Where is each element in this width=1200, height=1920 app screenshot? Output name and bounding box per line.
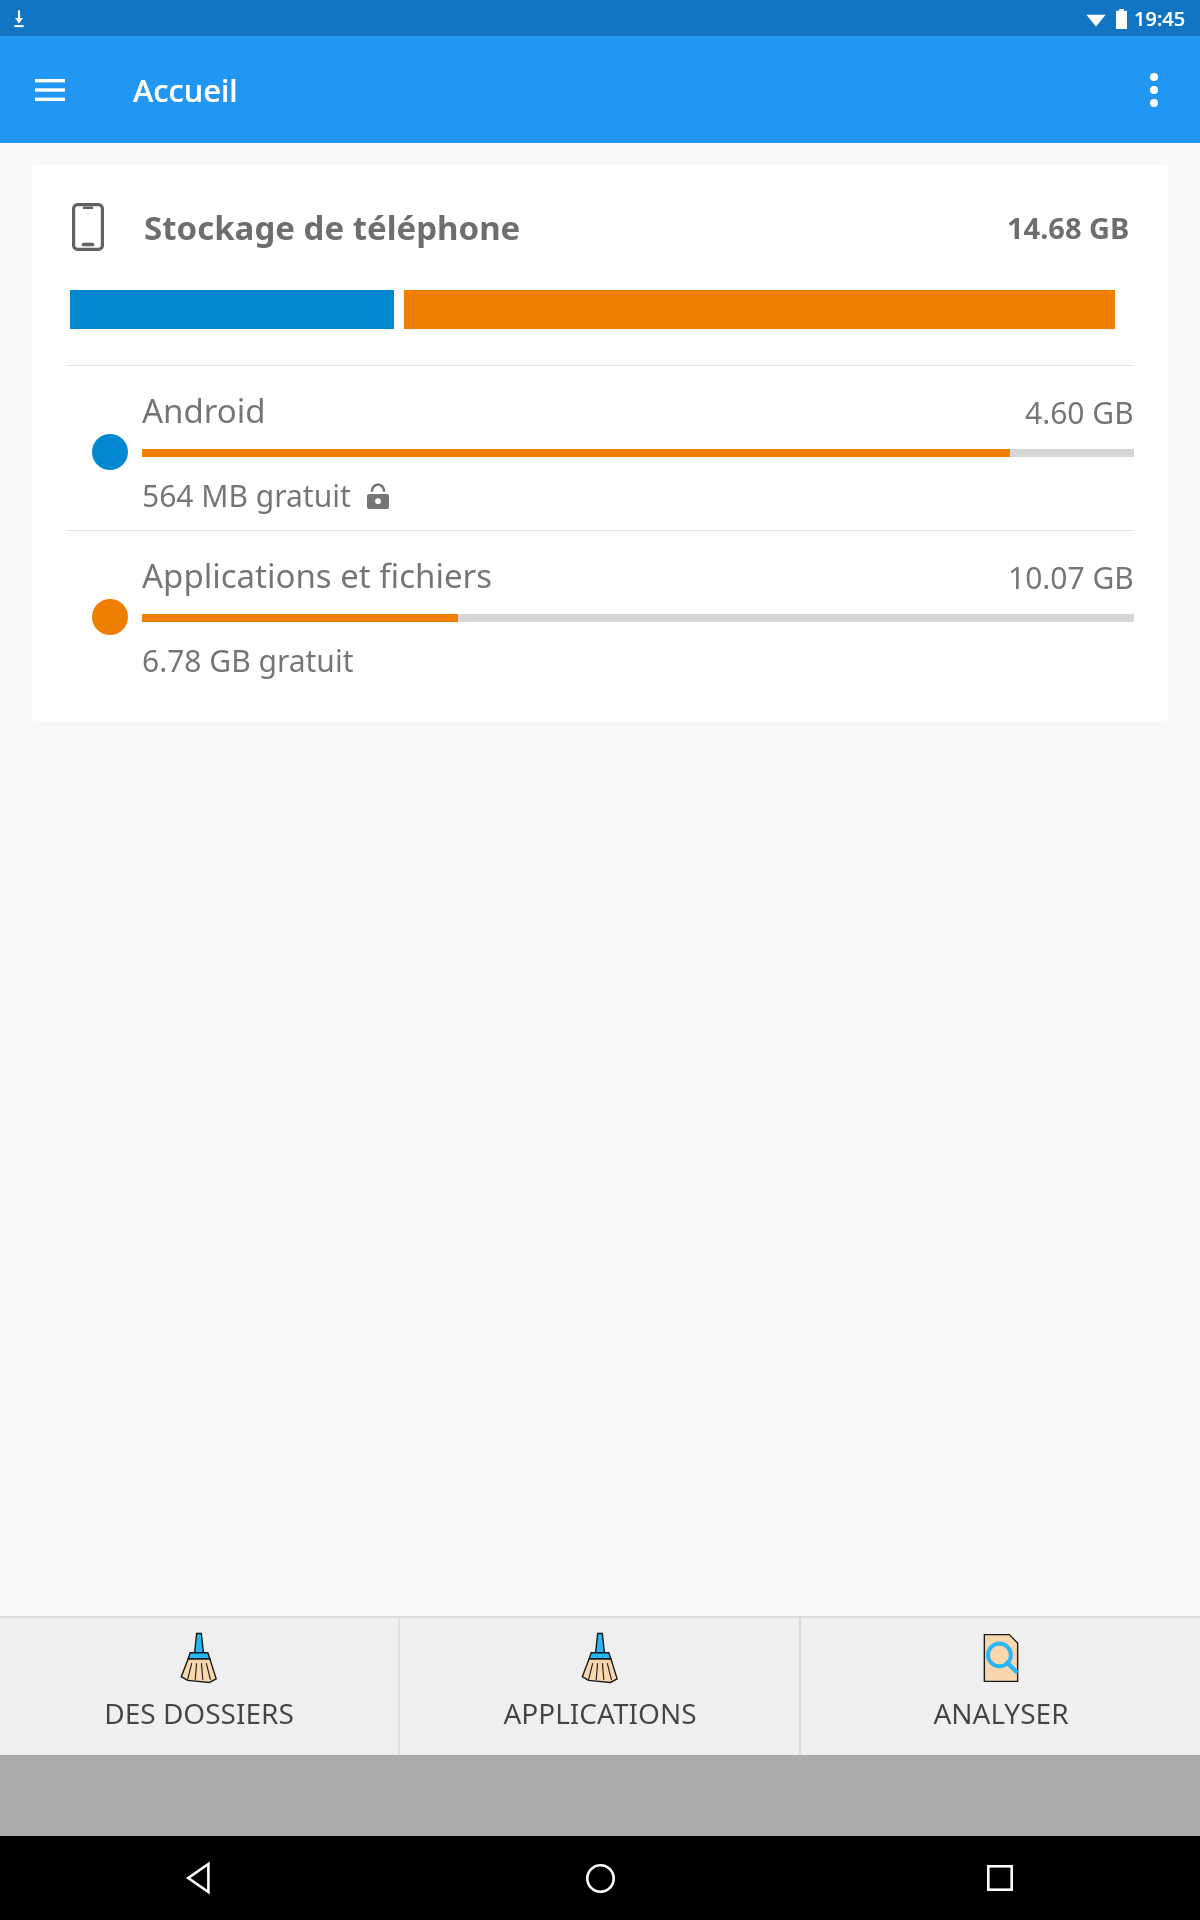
button[interactable]: More options (1126, 62, 1182, 118)
staticText: Accueil (133, 69, 238, 111)
button[interactable]: Applications et fichiers (32, 531, 1168, 695)
staticText: 6.78 GB gratuit (142, 640, 354, 681)
button[interactable]: Stockage de téléphone (32, 165, 1168, 721)
staticText: 14.68 GB (1007, 208, 1130, 247)
staticText: 10.07 GB (1008, 557, 1134, 598)
staticText: 19:45 (1134, 5, 1186, 32)
staticText: Stockage de téléphone (144, 205, 521, 250)
staticText: Android (142, 388, 266, 433)
staticText: 564 MB gratuit (142, 475, 351, 516)
staticText: APPLICATIONS (503, 1694, 697, 1732)
button[interactable]: Home (400, 1836, 800, 1920)
button[interactable]: DES DOSSIERS (0, 1618, 398, 1755)
button[interactable]: Android (32, 366, 1168, 530)
staticText: DES DOSSIERS (104, 1694, 294, 1732)
button[interactable]: Open navigation menu (22, 62, 78, 118)
button[interactable]: ANALYSER (801, 1618, 1200, 1755)
button[interactable]: Back (0, 1836, 400, 1920)
button[interactable]: APPLICATIONS (400, 1618, 799, 1755)
staticText: ANALYSER (933, 1694, 1069, 1732)
staticText: 4.60 GB (1025, 392, 1134, 433)
button[interactable]: Recent apps (800, 1836, 1200, 1920)
staticText: Applications et fichiers (142, 553, 492, 598)
